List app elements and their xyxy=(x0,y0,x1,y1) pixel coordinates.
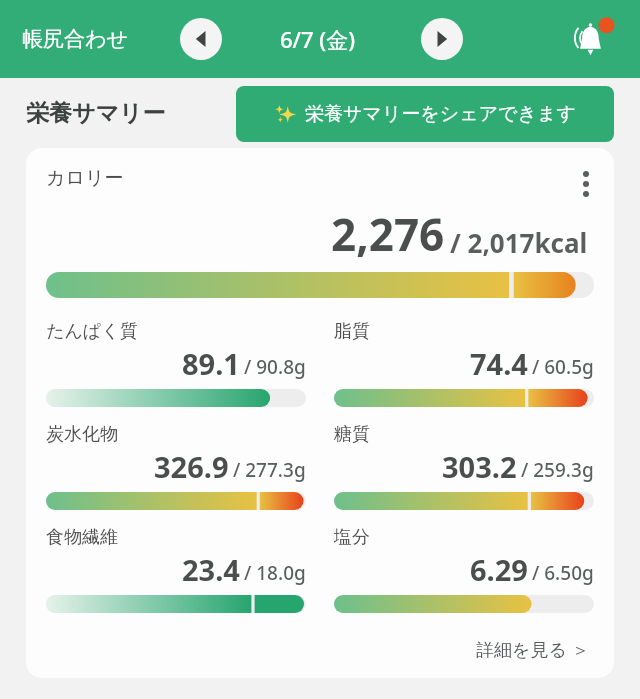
button[interactable]: Previous day xyxy=(180,18,222,60)
staticText: 326.9 xyxy=(154,447,229,486)
staticText: / 60.5g xyxy=(532,354,594,380)
staticText: 詳細を見る ＞ xyxy=(476,637,590,662)
button[interactable]: 塩分 xyxy=(334,526,594,613)
staticText: 23.4 xyxy=(182,550,240,589)
staticText: 6/7 (金) xyxy=(280,24,356,54)
staticText: / 90.8g xyxy=(244,354,306,380)
button[interactable]: 食物繊維 xyxy=(46,526,306,613)
staticText: たんぱく質 xyxy=(46,320,138,343)
button[interactable]: 詳細を見る ＞ xyxy=(470,631,596,668)
staticText: / 277.3g xyxy=(233,457,306,483)
staticText: 303.2 xyxy=(442,447,517,486)
staticText: 6.29 xyxy=(470,550,528,589)
button[interactable]: 炭水化物 xyxy=(46,423,306,510)
staticText: / 2,017kcal xyxy=(450,225,588,260)
button[interactable]: 糖質 xyxy=(334,423,594,510)
staticText: 炭水化物 xyxy=(46,423,118,446)
staticText: / 259.3g xyxy=(521,457,594,483)
button[interactable]: カロリー xyxy=(26,148,614,678)
staticText: 2,276 xyxy=(331,204,445,264)
button[interactable]: Notifications xyxy=(566,13,618,65)
staticText: 栄養サマリーをシェアできます xyxy=(305,102,576,126)
staticText: 塩分 xyxy=(334,526,370,549)
staticText: 食物繊維 xyxy=(46,526,118,549)
staticText: 栄養サマリー xyxy=(26,99,166,128)
button[interactable]: 脂質 xyxy=(334,320,594,407)
button[interactable]: More options xyxy=(568,166,604,202)
staticText: カロリー xyxy=(46,166,124,190)
staticText: 脂質 xyxy=(334,320,370,343)
button[interactable]: たんぱく質 xyxy=(46,320,306,407)
staticText: 糖質 xyxy=(334,423,370,446)
staticText: 帳尻合わせ xyxy=(22,26,128,52)
staticText: / 6.50g xyxy=(532,560,594,586)
staticText: 89.1 xyxy=(182,344,240,383)
staticText: 74.4 xyxy=(470,344,528,383)
staticText: / 18.0g xyxy=(244,560,306,586)
button[interactable]: Next day xyxy=(421,18,463,60)
button[interactable]: 栄養サマリーをシェアできます xyxy=(236,86,614,142)
